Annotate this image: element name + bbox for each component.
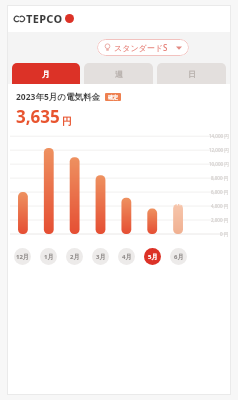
- staticText: 2月: [70, 253, 80, 261]
- staticText: 6月: [174, 253, 184, 261]
- button[interactable]: 4月: [118, 248, 135, 265]
- staticText: 月: [42, 69, 50, 79]
- button[interactable]: 日: [157, 63, 226, 84]
- staticText: 4,000 円: [211, 203, 229, 209]
- staticText: スタンダードS: [114, 42, 168, 53]
- staticText: TEPCO: [26, 11, 63, 26]
- button[interactable]: 2月: [66, 248, 83, 265]
- staticText: 5月: [148, 253, 158, 261]
- staticText: 週: [115, 69, 123, 79]
- button[interactable]: 5月: [144, 248, 161, 265]
- staticText: 1月: [44, 253, 54, 261]
- button[interactable]: 3月: [92, 248, 109, 265]
- button[interactable]: スタンダードS: [97, 39, 189, 56]
- staticText: 8,000 円: [211, 175, 229, 181]
- staticText: 3,635: [16, 105, 60, 128]
- button[interactable]: 12月: [14, 248, 31, 265]
- staticText: 0 円: [220, 231, 229, 237]
- staticText: 6,000 円: [211, 189, 229, 195]
- button[interactable]: 6月: [170, 248, 187, 265]
- button[interactable]: 週: [84, 63, 153, 84]
- button[interactable]: 月: [12, 63, 80, 84]
- staticText: 確定: [108, 94, 118, 100]
- staticText: 円: [62, 115, 72, 128]
- button[interactable]: 1月: [40, 248, 57, 265]
- staticText: 10,000 円: [209, 161, 229, 167]
- staticText: 2023年5月の電気料金: [16, 91, 101, 103]
- staticText: 12,000 円: [209, 147, 229, 153]
- staticText: 3月: [96, 253, 106, 261]
- staticText: 4月: [122, 253, 132, 261]
- staticText: 14,000 円: [209, 133, 229, 139]
- staticText: 2,000 円: [211, 217, 229, 223]
- staticText: 12月: [16, 253, 29, 261]
- staticText: 日: [188, 69, 196, 79]
